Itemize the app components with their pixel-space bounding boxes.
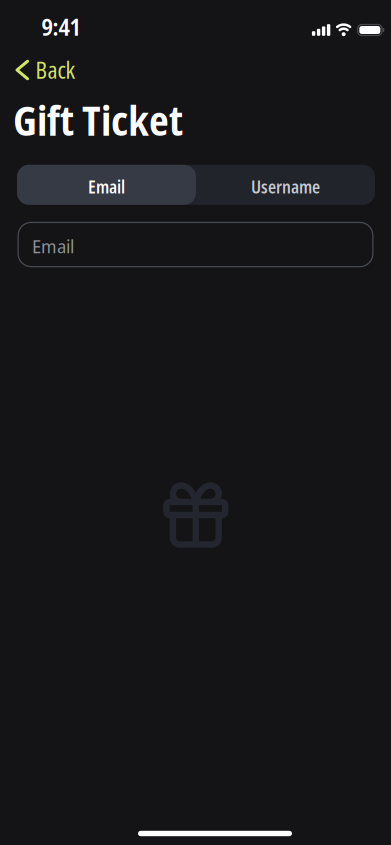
staticText: Gift Ticket bbox=[13, 91, 183, 148]
staticText: Email bbox=[32, 233, 74, 259]
staticText: Back bbox=[35, 55, 75, 85]
button[interactable]: Email bbox=[17, 222, 373, 267]
staticText: 9:41 bbox=[41, 12, 80, 42]
button[interactable]: Email bbox=[17, 165, 196, 205]
staticText: Username bbox=[251, 175, 320, 199]
staticText: Email bbox=[88, 175, 125, 199]
button[interactable]: Back bbox=[0, 61, 75, 79]
button[interactable]: Username bbox=[196, 165, 375, 205]
